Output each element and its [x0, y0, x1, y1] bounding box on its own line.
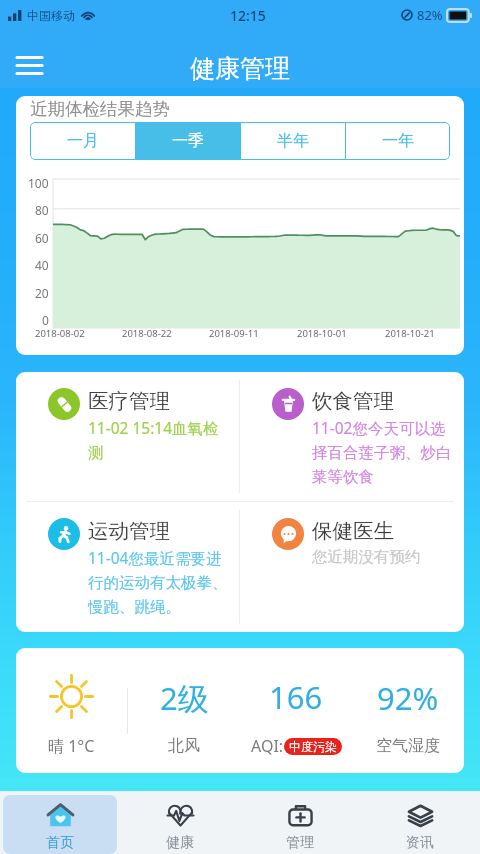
staticText: 保健医生	[312, 518, 394, 544]
staticText: 100	[28, 175, 49, 191]
staticText: 一年	[382, 131, 414, 151]
staticText: 2018-08-22	[122, 327, 172, 340]
staticText: 12:15	[230, 6, 266, 25]
staticText: 82%	[417, 6, 443, 24]
staticText: 晴 1°C	[48, 735, 95, 757]
staticText: 首页	[46, 834, 74, 852]
staticText: 一月	[67, 131, 99, 151]
staticText: 半年	[277, 131, 309, 151]
staticText: 80	[35, 202, 49, 218]
button[interactable]: Menu	[4, 46, 55, 84]
staticText: 北风	[168, 736, 200, 756]
staticText: 近期体检结果趋势	[30, 98, 170, 120]
button[interactable]: 运动管理	[16, 502, 239, 632]
button[interactable]: 医疗管理	[16, 372, 239, 501]
button[interactable]: 一季	[136, 122, 240, 160]
button[interactable]: 管理	[243, 795, 357, 854]
button[interactable]: 保健医生	[240, 502, 464, 632]
staticText: AQI:	[251, 735, 284, 757]
staticText: 2018-10-21	[385, 327, 435, 340]
staticText: 20	[35, 285, 49, 301]
button[interactable]: 一月	[30, 122, 135, 160]
button[interactable]: 半年	[241, 122, 345, 160]
staticText: 中度污染	[289, 739, 337, 754]
staticText: 11-02您今天可以选择百合莲子粥、炒白菜等饮食	[312, 417, 455, 487]
staticText: 中国移动	[27, 8, 75, 23]
staticText: 您近期没有预约	[312, 547, 421, 567]
staticText: 11-02 15:14血氧检测	[88, 417, 230, 463]
staticText: 2018-08-02	[35, 327, 85, 340]
staticText: 2018-09-11	[209, 327, 259, 340]
staticText: 饮食管理	[312, 388, 394, 414]
staticText: 一季	[172, 131, 204, 151]
staticText: 166	[269, 676, 323, 718]
staticText: 11-04您最近需要进行的运动有太极拳、慢跑、跳绳。	[88, 547, 230, 617]
staticText: 空气湿度	[376, 736, 440, 756]
staticText: 运动管理	[88, 518, 170, 544]
button[interactable]: 资讯	[363, 795, 477, 854]
staticText: 健康	[166, 834, 194, 852]
staticText: 2018-10-01	[297, 327, 347, 340]
staticText: 医疗管理	[88, 388, 170, 414]
staticText: 0	[42, 312, 49, 328]
staticText: 60	[35, 230, 49, 246]
button[interactable]: 饮食管理	[240, 372, 464, 501]
staticText: 92%	[377, 677, 439, 719]
staticText: 健康管理	[190, 53, 290, 84]
staticText: 资讯	[406, 834, 434, 852]
button[interactable]: 健康	[123, 795, 237, 854]
button[interactable]: 一年	[346, 122, 450, 160]
staticText: 2级	[160, 677, 209, 719]
staticText: 40	[35, 257, 49, 273]
button[interactable]: 首页	[3, 795, 117, 854]
staticText: 管理	[286, 834, 314, 852]
